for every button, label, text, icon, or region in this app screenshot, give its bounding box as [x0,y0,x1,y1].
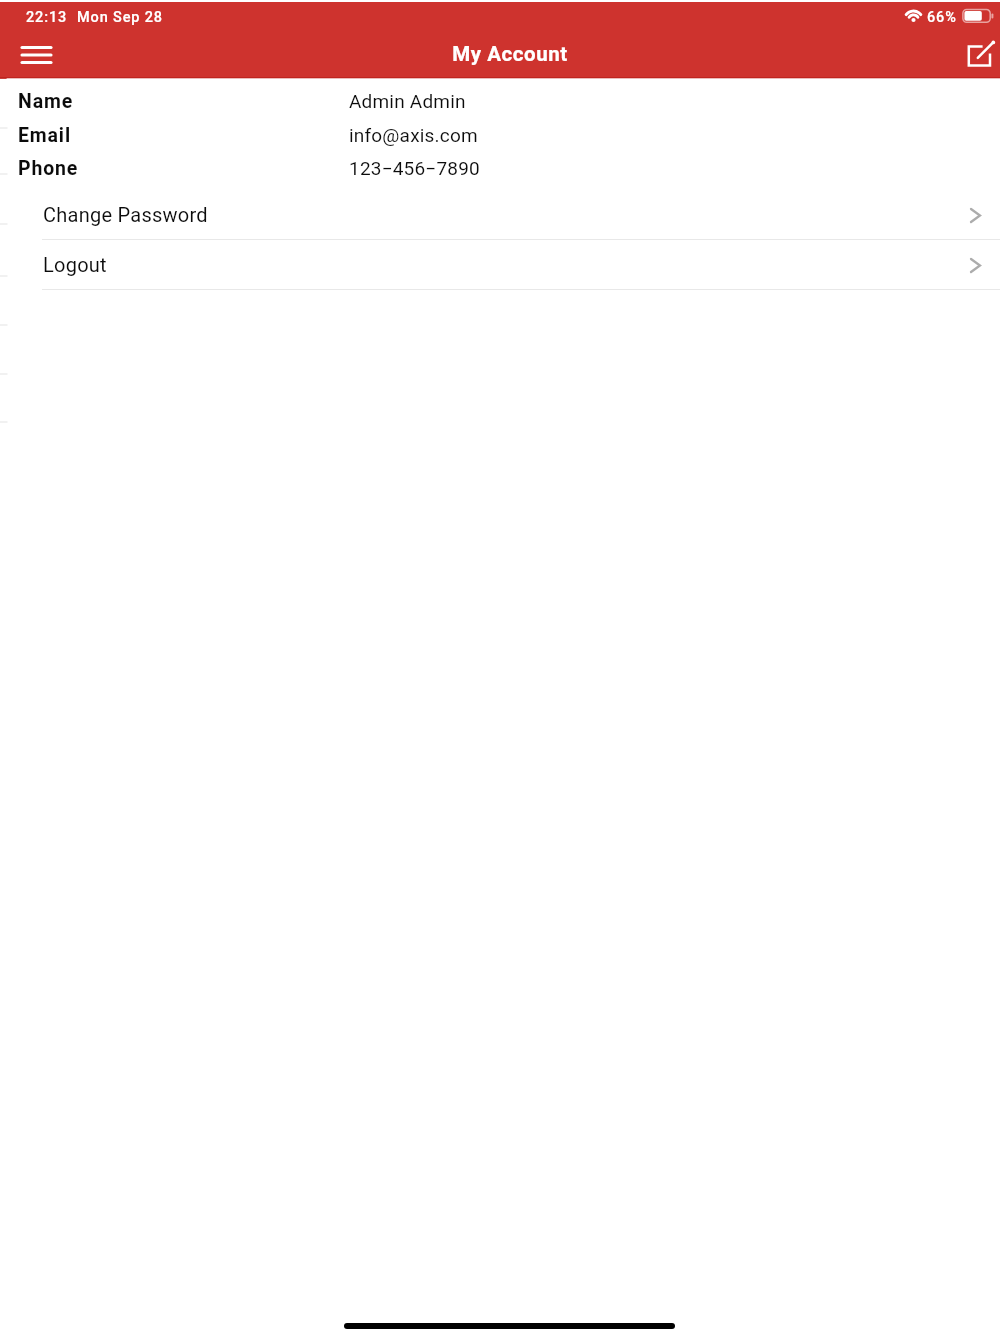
staticText: info@axis.com [349,124,478,146]
button[interactable]: Menu [9,35,63,75]
staticText: 22:13 [26,9,68,26]
staticText: Phone [18,157,79,180]
staticText: Mon Sep 28 [77,9,163,26]
staticText: Admin Admin [349,90,466,112]
staticText: 66% [927,9,957,26]
staticText: Email [18,124,71,147]
staticText: Logout [43,253,107,276]
staticText: My Account [452,42,568,66]
button[interactable]: Logout [0,240,1000,289]
button[interactable]: Edit [955,33,1000,78]
staticText: 123‒456‒7890 [349,157,480,179]
staticText: Name [18,90,74,113]
button[interactable]: Change Password [0,190,1000,239]
staticText: Change Password [43,203,208,226]
